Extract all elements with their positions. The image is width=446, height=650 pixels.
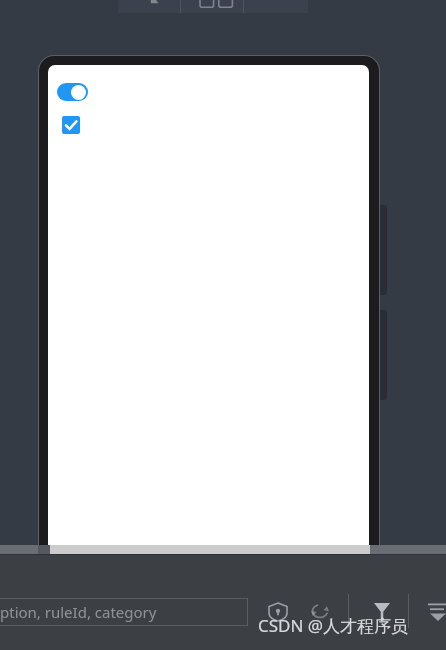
staticText: ption, ruleId, category (0, 602, 157, 622)
button[interactable]: Collapse all (424, 598, 446, 626)
button[interactable]: Inspections (264, 598, 292, 626)
button[interactable]: Toggle switch (57, 82, 89, 102)
button[interactable]: Refresh (306, 598, 334, 626)
staticText: CSDN @人才程序员 (258, 614, 409, 637)
button[interactable]: Checkbox checked (62, 116, 80, 134)
button[interactable]: Back (146, 0, 162, 13)
button[interactable]: Filter (368, 598, 396, 626)
button[interactable]: ption, ruleId, category (0, 598, 248, 626)
button[interactable]: Devices (198, 0, 238, 13)
